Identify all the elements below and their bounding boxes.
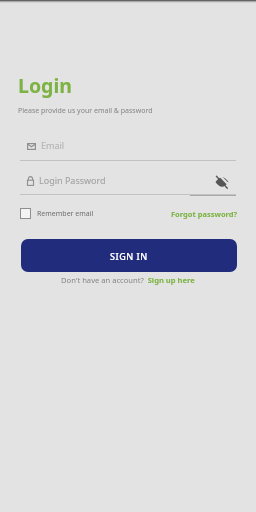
staticText: Login — [18, 72, 72, 99]
staticText: Remember email — [37, 209, 94, 219]
button[interactable]: Don't have an account? Sign up here — [61, 275, 195, 285]
staticText: SIGN IN — [110, 250, 148, 262]
staticText: Login Password — [39, 174, 106, 186]
staticText: Email — [41, 139, 65, 151]
button[interactable]: SIGN IN — [21, 239, 237, 272]
button[interactable] — [215, 176, 229, 188]
staticText: Please provide us your email & password — [18, 106, 153, 116]
button[interactable]: Email — [20, 139, 236, 161]
button[interactable]: Forgot password? — [171, 209, 238, 219]
button[interactable]: Remember email — [20, 208, 94, 219]
button[interactable]: Login Password — [20, 174, 236, 196]
